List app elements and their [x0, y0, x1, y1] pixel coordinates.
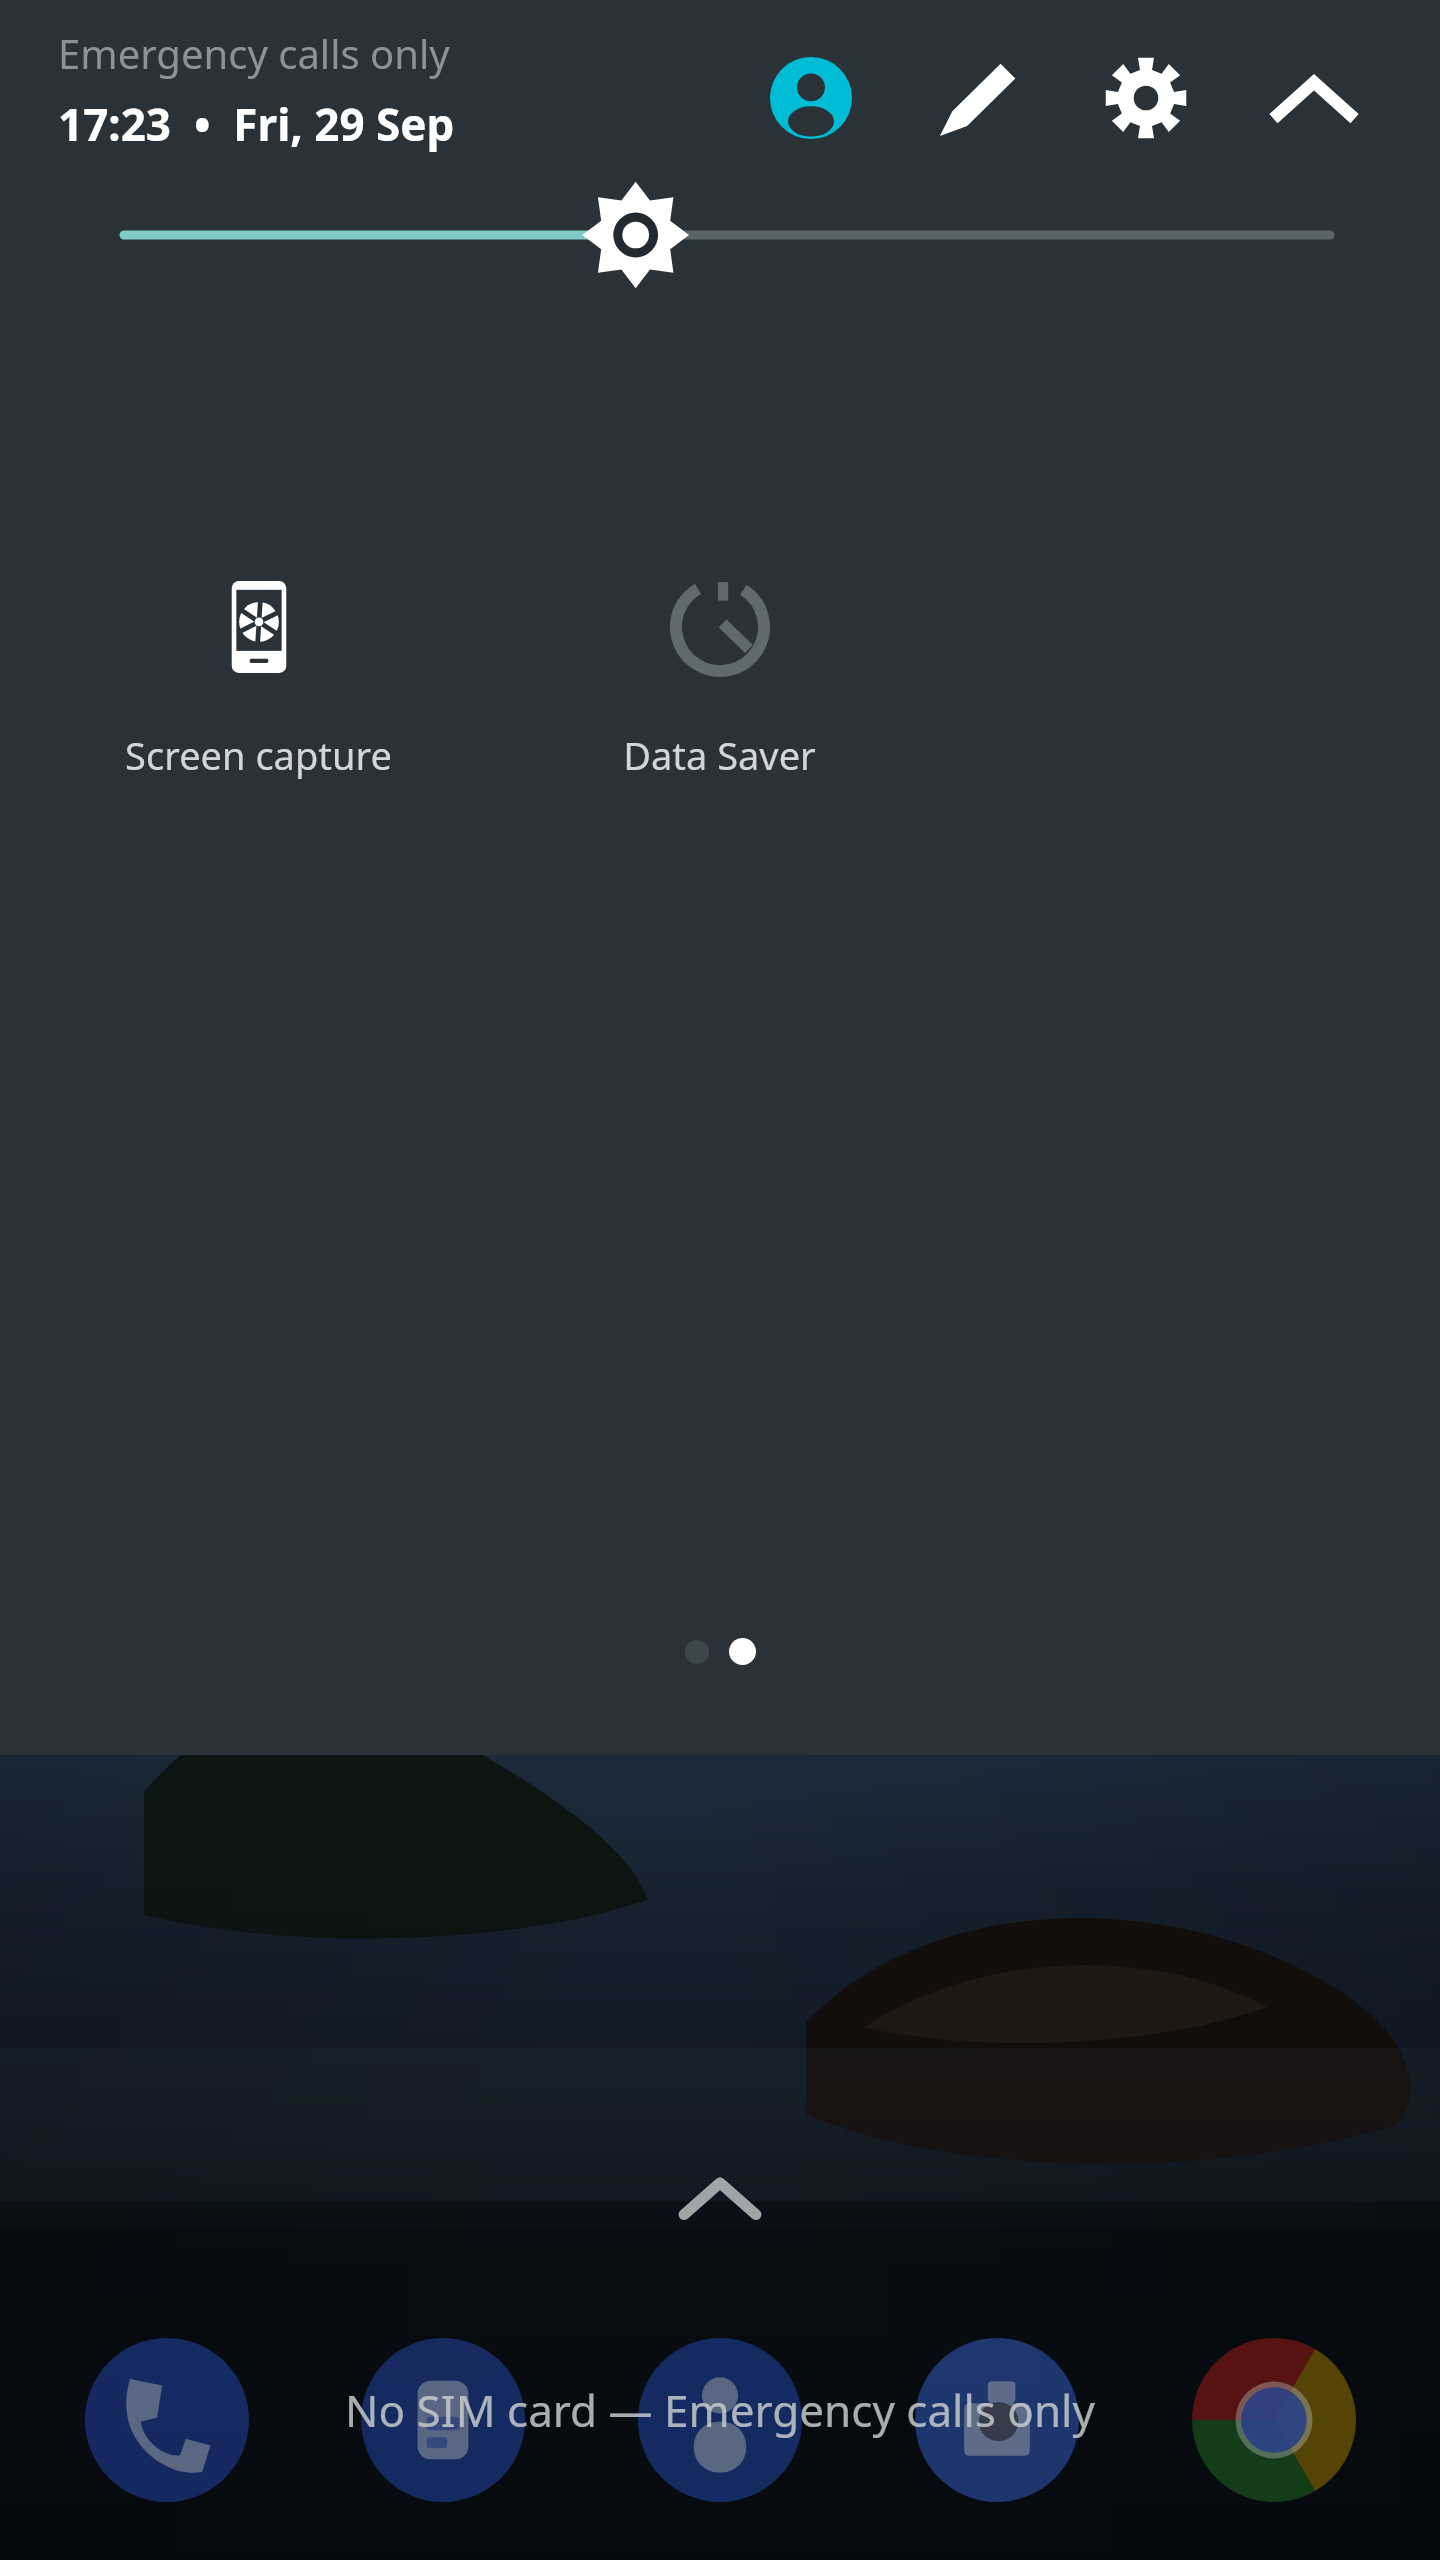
button[interactable]: Chrome — [1179, 2325, 1369, 2515]
staticText: Emergency calls only — [58, 26, 450, 80]
button[interactable]: Camera — [902, 2325, 1092, 2515]
button[interactable]: Open app drawer — [660, 2160, 780, 2250]
staticText: Screen capture — [125, 729, 392, 781]
button[interactable]: Edit tiles — [906, 26, 1050, 170]
staticText: 17:23 • Fri, 29 Sep — [58, 94, 455, 154]
button[interactable]: Phone — [72, 2325, 262, 2515]
button[interactable]: Messages — [348, 2325, 538, 2515]
button[interactable]: Data Saver — [526, 565, 912, 815]
button[interactable]: Brightness — [100, 177, 1340, 293]
staticText: No SIM card — Emergency calls only — [345, 2380, 1095, 2440]
button[interactable]: Screen capture — [65, 565, 451, 815]
button[interactable]: Contacts — [625, 2325, 815, 2515]
staticText: Data Saver — [623, 729, 816, 781]
button[interactable]: Account — [739, 26, 883, 170]
button[interactable]: Settings — [1074, 26, 1218, 170]
button[interactable]: Collapse quick settings — [1242, 26, 1386, 170]
